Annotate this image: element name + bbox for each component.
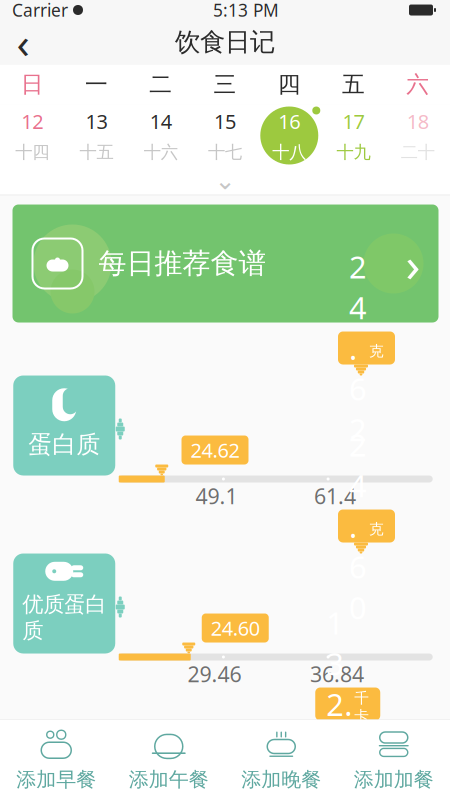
staticText: 18	[407, 108, 429, 135]
staticText: 12	[21, 108, 43, 135]
staticText: 克	[369, 520, 384, 538]
staticText: 饮食日记	[175, 26, 275, 57]
staticText: 每日推荐食谱	[98, 246, 266, 281]
staticText: ‹	[16, 14, 29, 70]
staticText: 十五	[79, 142, 113, 163]
button[interactable]: 17	[321, 104, 386, 166]
staticText: 添加加餐	[354, 767, 434, 792]
staticText: 29.46	[187, 660, 241, 688]
button[interactable]: 12	[0, 104, 64, 166]
button[interactable]: 添加加餐	[337, 720, 450, 800]
staticText: 蛋白质	[28, 430, 100, 459]
staticText: 六	[406, 71, 429, 98]
staticText: 四	[278, 71, 301, 98]
staticText: 十四	[15, 142, 49, 163]
staticText: 克	[369, 342, 384, 360]
staticText: 优质蛋白质	[22, 591, 106, 644]
button[interactable]: Back	[0, 20, 46, 64]
staticText: 16	[278, 108, 300, 135]
staticText: 61.4	[314, 482, 356, 510]
staticText: 热量	[40, 784, 88, 800]
staticText: Carrier	[12, 0, 68, 21]
staticText: 13	[85, 108, 107, 135]
button[interactable]: 18	[386, 104, 450, 166]
staticText: 36.84	[310, 660, 364, 688]
staticText: 14	[150, 108, 172, 135]
button[interactable]: 14	[129, 104, 193, 166]
staticText: 24.62	[190, 437, 239, 463]
button[interactable]: 添加午餐	[112, 720, 225, 800]
button[interactable]: 添加早餐	[0, 720, 112, 800]
button[interactable]: 15	[193, 104, 257, 166]
button[interactable]: 16	[257, 104, 321, 166]
staticText: 二十	[401, 142, 435, 163]
staticText: 49.1	[195, 482, 237, 510]
staticText: ›	[405, 232, 420, 295]
staticText: 17	[343, 108, 365, 135]
staticText: 24.60	[211, 615, 260, 641]
staticText: 千卡	[354, 689, 369, 725]
button[interactable]: 添加晚餐	[225, 720, 337, 800]
staticText: 15	[214, 108, 236, 135]
staticText: 五	[342, 71, 365, 98]
staticText: 二	[149, 71, 172, 98]
button[interactable]: 每日推荐食谱	[0, 204, 450, 322]
staticText: 24.60	[349, 424, 367, 628]
staticText: 一	[85, 71, 108, 98]
staticText: 十六	[144, 142, 178, 163]
staticText: 添加晚餐	[241, 767, 321, 792]
staticText: 十八	[272, 142, 306, 163]
staticText: 132.00	[326, 602, 352, 800]
staticText: 日	[21, 71, 44, 98]
staticText: 十七	[208, 142, 242, 163]
staticText: ⌄	[214, 166, 235, 195]
staticText: 三	[213, 71, 236, 98]
staticText: 添加午餐	[129, 767, 209, 792]
staticText: 添加早餐	[16, 767, 96, 792]
button[interactable]: 13	[64, 104, 129, 166]
staticText: 24.62	[349, 246, 367, 450]
staticText: 十九	[337, 142, 371, 163]
staticText: 5:13 PM	[213, 0, 279, 21]
